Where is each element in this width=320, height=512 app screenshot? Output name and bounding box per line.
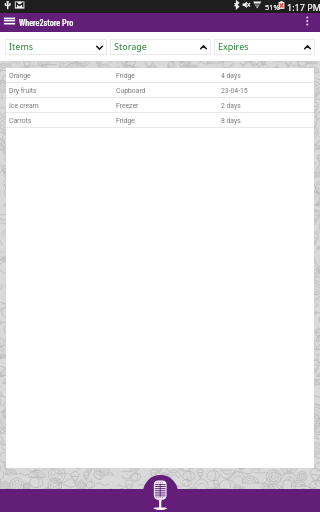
- staticText: Carrots: [9, 117, 32, 125]
- button[interactable]: Voice input: [143, 475, 178, 510]
- button[interactable]: Dry fruits: [6, 83, 314, 98]
- staticText: Orange: [9, 72, 31, 80]
- button[interactable]: Carrots: [6, 113, 314, 128]
- button[interactable]: More options: [300, 13, 320, 32]
- staticText: 23-04-15: [221, 87, 248, 95]
- button[interactable]: Orange: [6, 68, 314, 83]
- staticText: Fridge: [116, 117, 135, 125]
- staticText: 1:17 PM: [287, 1, 320, 13]
- staticText: 8 days: [221, 117, 241, 125]
- button[interactable]: Expires: [214, 39, 315, 55]
- staticText: Where2store Pro: [19, 18, 74, 28]
- staticText: Expires: [218, 40, 249, 52]
- button[interactable]: Ice cream: [6, 98, 314, 113]
- staticText: 51%: [265, 2, 280, 12]
- staticText: Dry fruits: [9, 87, 37, 95]
- button[interactable]: Navigation menu: [0, 13, 18, 32]
- staticText: 4 days: [221, 72, 241, 80]
- staticText: Storage: [114, 40, 147, 52]
- staticText: 2 days: [221, 102, 241, 110]
- staticText: Cupboard: [116, 87, 146, 95]
- button[interactable]: Items: [5, 39, 107, 55]
- staticText: Freezer: [116, 102, 139, 110]
- staticText: Fridge: [116, 72, 135, 80]
- button[interactable]: Storage: [110, 39, 211, 55]
- staticText: Ice cream: [9, 102, 39, 110]
- staticText: Items: [9, 40, 34, 52]
